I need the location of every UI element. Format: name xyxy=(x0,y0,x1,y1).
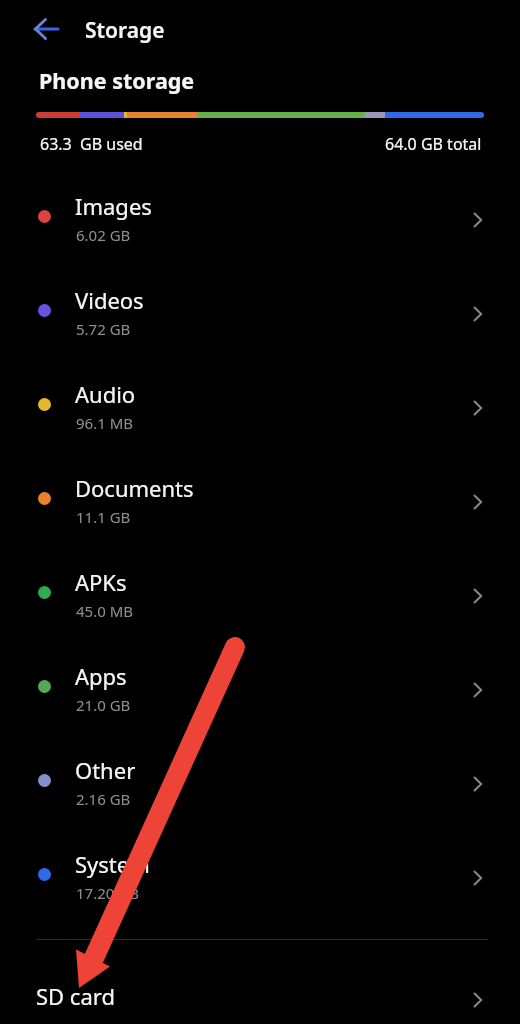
button[interactable]: APKs xyxy=(0,539,520,633)
staticText: 96.1 MB xyxy=(76,413,134,433)
staticText: 5.72 GB xyxy=(76,319,131,339)
button[interactable]: Other xyxy=(0,727,520,821)
staticText: 11.1 GB xyxy=(76,507,131,527)
staticText: Other xyxy=(75,755,136,785)
staticText: Images xyxy=(75,191,152,221)
staticText: 45.0 MB xyxy=(76,601,134,621)
staticText: Videos xyxy=(75,285,144,315)
button[interactable]: Audio xyxy=(0,351,520,445)
staticText: APKs xyxy=(75,567,127,597)
staticText: Phone storage xyxy=(39,66,195,95)
button[interactable]: Videos xyxy=(0,257,520,351)
staticText: 2.16 GB xyxy=(76,789,131,809)
button[interactable]: System xyxy=(0,821,520,915)
button[interactable]: SD card xyxy=(0,952,520,1024)
staticText: Storage xyxy=(85,16,165,45)
button[interactable]: Images xyxy=(0,163,520,257)
button[interactable]: Apps xyxy=(0,633,520,727)
button[interactable] xyxy=(24,12,68,46)
staticText: Documents xyxy=(75,473,194,503)
staticText: 63.3 GB used xyxy=(40,133,143,155)
staticText: Apps xyxy=(75,661,127,691)
staticText: Audio xyxy=(75,379,136,409)
staticText: 21.0 GB xyxy=(76,695,131,715)
staticText: 64.0 GB total xyxy=(385,133,482,155)
staticText: System xyxy=(75,849,150,879)
staticText: SD card xyxy=(36,981,115,1011)
staticText: 6.02 GB xyxy=(76,225,131,245)
staticText: 17.20 GB xyxy=(76,883,139,903)
button[interactable]: Documents xyxy=(0,445,520,539)
